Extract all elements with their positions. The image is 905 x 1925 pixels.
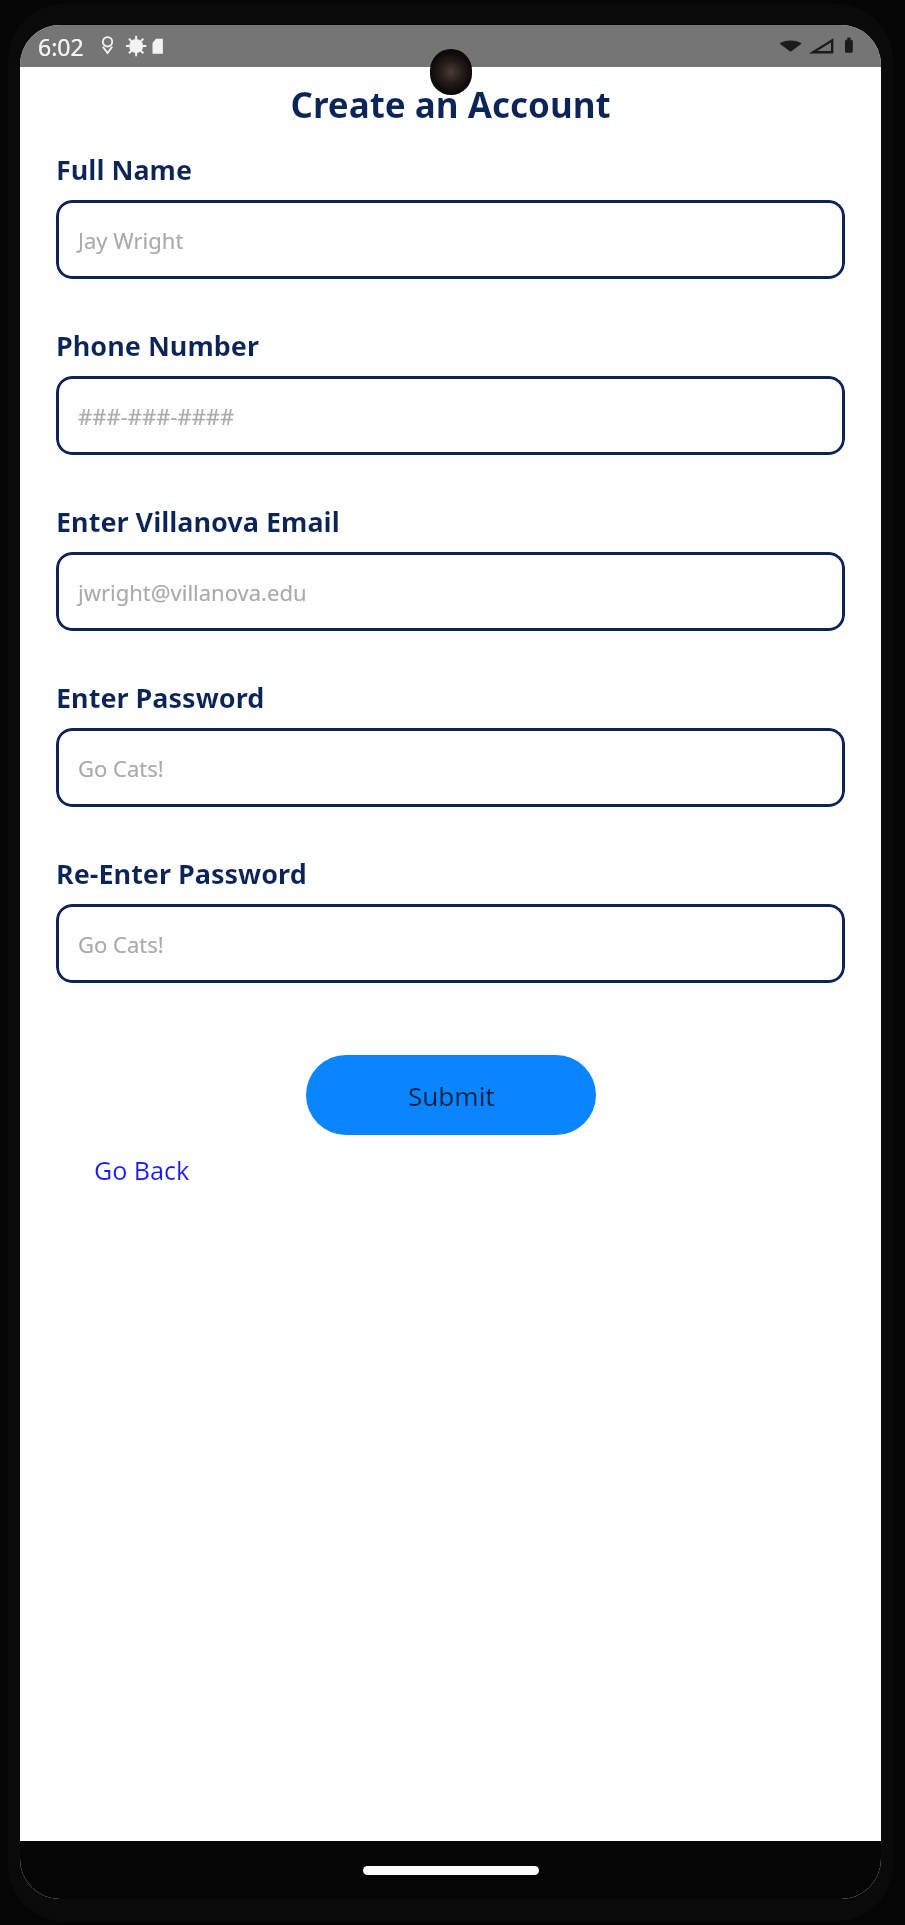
staticText: Full Name	[56, 151, 193, 188]
button[interactable]: Go Cats!	[56, 904, 845, 983]
staticText: Enter Password	[56, 679, 265, 716]
staticText: Go Cats!	[78, 929, 164, 959]
staticText: 6:02	[38, 31, 84, 62]
staticText: jwright@villanova.edu	[78, 577, 307, 607]
button[interactable]: jwright@villanova.edu	[56, 552, 845, 631]
button[interactable]: Jay Wright	[56, 200, 845, 279]
staticText: Jay Wright	[78, 225, 184, 255]
other: Home gesture	[363, 1866, 539, 1875]
staticText: Create an Account	[290, 81, 611, 129]
staticText: Re-Enter Password	[56, 855, 307, 892]
staticText: Go Back	[94, 1153, 190, 1187]
staticText: Go Cats!	[78, 753, 164, 783]
button[interactable]: Go Back	[90, 1149, 194, 1191]
staticText: Enter Villanova Email	[56, 503, 340, 540]
button[interactable]: ###-###-####	[56, 376, 845, 455]
staticText: Phone Number	[56, 327, 259, 364]
button[interactable]: Go Cats!	[56, 728, 845, 807]
staticText: ###-###-####	[78, 401, 235, 431]
button[interactable]: Submit	[306, 1055, 596, 1135]
staticText: Submit	[408, 1078, 495, 1113]
